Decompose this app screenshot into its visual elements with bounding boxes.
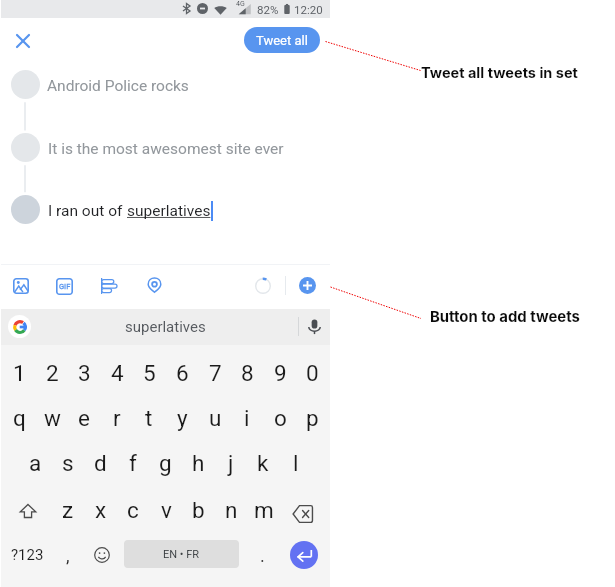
button[interactable]: Close (11, 29, 35, 53)
staticText: Tweet all tweets in set (421, 64, 578, 82)
button[interactable]: g (149, 447, 181, 479)
button[interactable]: p (296, 402, 328, 434)
staticText: 4G (236, 0, 245, 8)
staticText: v (161, 497, 172, 523)
staticText: d (94, 450, 107, 476)
button[interactable]: 5 (133, 357, 165, 389)
button[interactable]: Emoji (88, 541, 116, 569)
button[interactable]: 9 (264, 357, 296, 389)
button[interactable]: t (133, 402, 165, 434)
staticText: l (293, 450, 299, 476)
staticText: 0 (306, 360, 319, 386)
button[interactable]: 3 (68, 357, 100, 389)
button[interactable]: f (117, 447, 149, 479)
staticText: r (113, 405, 121, 431)
button[interactable]: Add location (147, 278, 162, 293)
button[interactable]: m (248, 494, 280, 526)
staticText: 8 (241, 360, 254, 386)
staticText: y (177, 405, 188, 431)
button[interactable]: e (68, 402, 100, 434)
staticText: i (244, 405, 250, 431)
staticText: 2 (46, 360, 59, 386)
staticText: m (254, 497, 274, 523)
staticText: c (127, 497, 139, 523)
button[interactable]: 1 (3, 357, 35, 389)
staticText: o (274, 405, 287, 431)
staticText: b (192, 497, 205, 523)
staticText: 1 (13, 360, 26, 386)
staticText: x (95, 497, 107, 523)
staticText: 82% (257, 3, 279, 16)
button[interactable]: Voice input (305, 317, 324, 336)
staticText: Android Police rocks (47, 77, 189, 95)
button[interactable]: b (182, 494, 214, 526)
staticText: s (62, 450, 74, 476)
staticText: 6 (176, 360, 189, 386)
staticText: j (228, 450, 234, 476)
button[interactable]: x (85, 494, 117, 526)
staticText: q (13, 405, 26, 431)
staticText: a (29, 450, 42, 476)
staticText: h (192, 450, 205, 476)
button[interactable]: Google (8, 315, 31, 338)
staticText: 5 (143, 360, 156, 386)
button[interactable]: r (101, 402, 133, 434)
button[interactable]: Add tweet (299, 277, 316, 294)
button[interactable]: s (52, 447, 84, 479)
button[interactable]: , (56, 541, 80, 569)
button[interactable]: k (247, 447, 279, 479)
staticText: 9 (274, 360, 287, 386)
staticText: Button to add tweets (430, 308, 580, 326)
button[interactable]: Backspace (292, 503, 314, 525)
staticText: f (129, 450, 137, 476)
button[interactable]: q (3, 402, 35, 434)
button[interactable]: 8 (231, 357, 263, 389)
staticText: superlatives (127, 202, 211, 220)
staticText: , (66, 545, 70, 566)
staticText: ?123 (11, 546, 44, 564)
button[interactable]: Add photo (13, 278, 29, 294)
button[interactable]: EN • FR (124, 540, 239, 568)
staticText: GIF (59, 282, 71, 291)
button[interactable]: n (215, 494, 247, 526)
button[interactable]: Enter (290, 541, 318, 569)
button[interactable]: o (264, 402, 296, 434)
staticText: EN • FR (163, 548, 200, 561)
button[interactable]: 0 (296, 357, 328, 389)
staticText: superlatives (125, 318, 206, 336)
button[interactable]: ?123 (8, 541, 46, 569)
button[interactable]: 7 (199, 357, 231, 389)
button[interactable]: . (250, 541, 274, 569)
staticText: 3 (78, 360, 91, 386)
button[interactable]: Add poll (101, 278, 117, 294)
button[interactable]: Shift (19, 502, 37, 520)
button[interactable]: u (199, 402, 231, 434)
staticText: 4 (111, 360, 124, 386)
staticText: k (257, 450, 269, 476)
staticText: 12:20 (294, 3, 323, 16)
staticText: 7 (209, 360, 222, 386)
button[interactable]: c (117, 494, 149, 526)
button[interactable]: i (231, 402, 263, 434)
button[interactable]: l (280, 447, 312, 479)
staticText: I ran out of (48, 202, 127, 220)
staticText: w (44, 405, 61, 431)
staticText: u (209, 405, 222, 431)
staticText: n (225, 497, 238, 523)
button[interactable]: j (215, 447, 247, 479)
button[interactable]: h (182, 447, 214, 479)
button[interactable]: v (150, 494, 182, 526)
button[interactable]: 4 (101, 357, 133, 389)
staticText: It is the most awesomest site ever (48, 140, 284, 158)
button[interactable]: z (52, 494, 84, 526)
button[interactable]: w (36, 402, 68, 434)
button[interactable]: y (166, 402, 198, 434)
button[interactable]: a (19, 447, 51, 479)
staticText: g (159, 450, 172, 476)
button[interactable]: d (84, 447, 116, 479)
button[interactable]: 6 (166, 357, 198, 389)
button[interactable]: Tweet all (244, 27, 320, 53)
button[interactable]: Add GIF (56, 278, 73, 295)
button[interactable]: 2 (36, 357, 68, 389)
staticText: p (306, 405, 319, 431)
